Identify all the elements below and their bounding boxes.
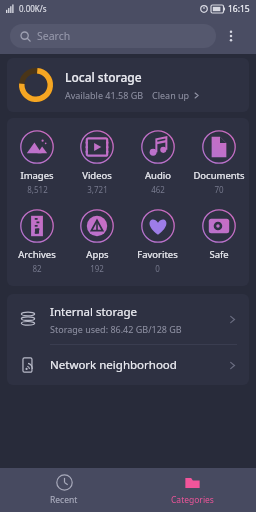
button[interactable]: Internal storage bbox=[7, 294, 249, 344]
staticText: 82 bbox=[32, 263, 42, 274]
button[interactable]: Categories bbox=[128, 468, 256, 512]
staticText: Recent bbox=[50, 494, 78, 506]
staticText: Search bbox=[37, 29, 71, 43]
staticText: Available 41.58 GB bbox=[65, 89, 144, 101]
staticText: 3,721 bbox=[87, 184, 108, 195]
button[interactable]: Videos bbox=[67, 128, 127, 197]
staticText: Archives bbox=[18, 248, 56, 261]
staticText: Images bbox=[20, 169, 54, 182]
button[interactable]: Audio bbox=[127, 128, 188, 197]
button[interactable]: Apps bbox=[67, 207, 127, 276]
staticText: 192 bbox=[90, 263, 104, 274]
staticText: Local storage bbox=[65, 69, 142, 85]
staticText: 70 bbox=[214, 184, 224, 195]
button[interactable]: More options bbox=[216, 21, 246, 51]
staticText: Categories bbox=[171, 494, 214, 506]
staticText: Apps bbox=[86, 248, 109, 261]
staticText: Videos bbox=[82, 169, 112, 182]
staticText: 462 bbox=[151, 184, 165, 195]
staticText: 8,512 bbox=[27, 184, 48, 195]
button[interactable]: Recent bbox=[0, 468, 128, 512]
button[interactable]: Documents bbox=[188, 128, 249, 197]
staticText: 0.00K/s bbox=[19, 3, 47, 14]
button[interactable]: Archives bbox=[7, 207, 67, 276]
button[interactable]: Images bbox=[7, 128, 67, 197]
staticText: Storage used: 86.42 GB/128 GB bbox=[50, 323, 182, 335]
staticText: 0 bbox=[155, 263, 160, 274]
button[interactable]: Favorites bbox=[127, 207, 188, 276]
staticText: Internal storage bbox=[50, 304, 138, 320]
staticText: Documents bbox=[193, 169, 245, 182]
button[interactable]: Search bbox=[10, 24, 216, 48]
staticText: Favorites bbox=[137, 248, 178, 261]
button[interactable]: Safe bbox=[188, 207, 249, 275]
button[interactable]: Local storage bbox=[7, 58, 249, 112]
staticText: Network neighborhood bbox=[50, 357, 228, 373]
staticText: Audio bbox=[145, 169, 171, 182]
button[interactable]: Network neighborhood bbox=[7, 345, 249, 385]
staticText: Clean up bbox=[152, 89, 190, 101]
staticText: 16:15 bbox=[228, 3, 250, 15]
staticText: Safe bbox=[209, 248, 229, 261]
